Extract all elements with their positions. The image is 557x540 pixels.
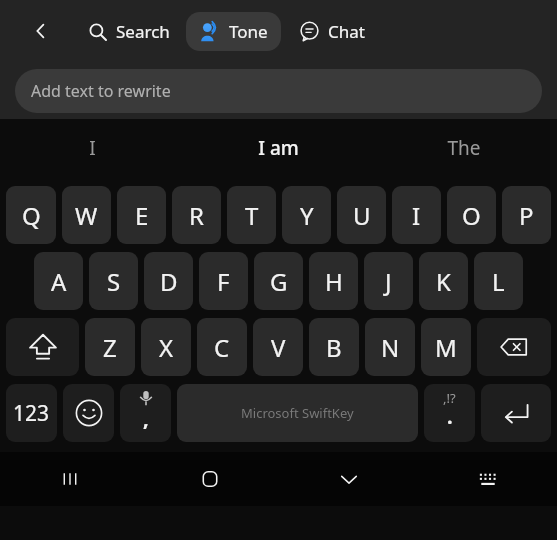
button[interactable]: Recent apps <box>0 452 140 506</box>
button[interactable]: Enter <box>481 384 551 442</box>
button[interactable]: 123 <box>6 384 57 442</box>
button[interactable]: Tone <box>186 12 281 51</box>
staticText: G <box>270 265 288 298</box>
staticText: A <box>51 265 67 298</box>
staticText: D <box>160 265 178 298</box>
staticText: X <box>159 331 174 364</box>
staticText: T <box>245 199 259 232</box>
button[interactable]: Backspace <box>477 318 551 376</box>
staticText: V <box>271 331 286 364</box>
button[interactable]: Add text to rewrite <box>15 69 542 113</box>
button[interactable]: Q <box>6 186 56 244</box>
button[interactable]: X <box>141 318 191 376</box>
staticText: K <box>436 265 451 298</box>
button[interactable]: I <box>0 119 185 177</box>
staticText: 123 <box>13 399 50 428</box>
button[interactable]: J <box>364 252 413 310</box>
button[interactable]: Home <box>140 452 279 506</box>
button[interactable]: O <box>447 186 496 244</box>
staticText: Tone <box>229 20 268 43</box>
staticText: . <box>447 403 453 430</box>
staticText: P <box>519 199 534 232</box>
staticText: , <box>143 405 149 432</box>
button[interactable]: I am <box>185 119 371 177</box>
staticText: I am <box>258 135 299 161</box>
staticText: J <box>385 265 392 298</box>
button[interactable]: The <box>371 119 557 177</box>
staticText: Chat <box>328 20 365 43</box>
button[interactable]: A <box>34 252 83 310</box>
button[interactable]: Chat <box>293 14 371 49</box>
button[interactable]: B <box>309 318 359 376</box>
staticText: Search <box>116 20 170 43</box>
staticText: M <box>435 331 457 364</box>
button[interactable]: W <box>62 186 111 244</box>
button[interactable]: Voice input and comma <box>120 384 171 442</box>
button[interactable]: E <box>117 186 166 244</box>
staticText: B <box>326 331 342 364</box>
staticText: Microsoft SwiftKey <box>241 404 354 422</box>
button[interactable]: K <box>419 252 468 310</box>
staticText: Add text to rewrite <box>31 80 171 102</box>
button[interactable]: Back <box>22 12 60 50</box>
button[interactable]: Switch keyboard <box>418 452 557 506</box>
button[interactable]: Hide keyboard <box>279 452 418 506</box>
staticText: U <box>353 199 371 232</box>
button[interactable]: D <box>144 252 193 310</box>
button[interactable]: G <box>254 252 303 310</box>
staticText: The <box>447 135 481 161</box>
staticText: H <box>325 265 343 298</box>
staticText: O <box>462 199 481 232</box>
button[interactable]: H <box>309 252 358 310</box>
button[interactable]: M <box>421 318 471 376</box>
staticText: I <box>412 199 421 232</box>
staticText: F <box>217 265 230 298</box>
staticText: S <box>107 265 121 298</box>
button[interactable]: I <box>392 186 441 244</box>
button[interactable]: T <box>227 186 276 244</box>
staticText: L <box>492 265 505 298</box>
button[interactable]: Y <box>282 186 331 244</box>
button[interactable]: L <box>474 252 523 310</box>
staticText: W <box>75 199 98 232</box>
button[interactable]: N <box>365 318 415 376</box>
button[interactable]: F <box>199 252 248 310</box>
staticText: R <box>189 199 204 232</box>
button[interactable]: R <box>172 186 221 244</box>
button[interactable]: P <box>502 186 551 244</box>
button[interactable]: Punctuation <box>424 384 475 442</box>
button[interactable]: Emoji <box>63 384 114 442</box>
button[interactable]: V <box>253 318 303 376</box>
staticText: Y <box>300 199 314 232</box>
staticText: Z <box>103 331 117 364</box>
button[interactable]: C <box>197 318 247 376</box>
staticText: ,!? <box>443 389 456 407</box>
button[interactable]: Z <box>85 318 135 376</box>
button[interactable]: Space <box>177 384 418 442</box>
button[interactable]: Shift <box>6 318 79 376</box>
button[interactable]: U <box>337 186 386 244</box>
button[interactable]: Search <box>82 14 176 49</box>
staticText: Q <box>22 199 41 232</box>
button[interactable]: S <box>89 252 138 310</box>
staticText: E <box>135 199 149 232</box>
staticText: C <box>214 331 230 364</box>
staticText: N <box>381 331 400 364</box>
staticText: I <box>89 135 96 161</box>
